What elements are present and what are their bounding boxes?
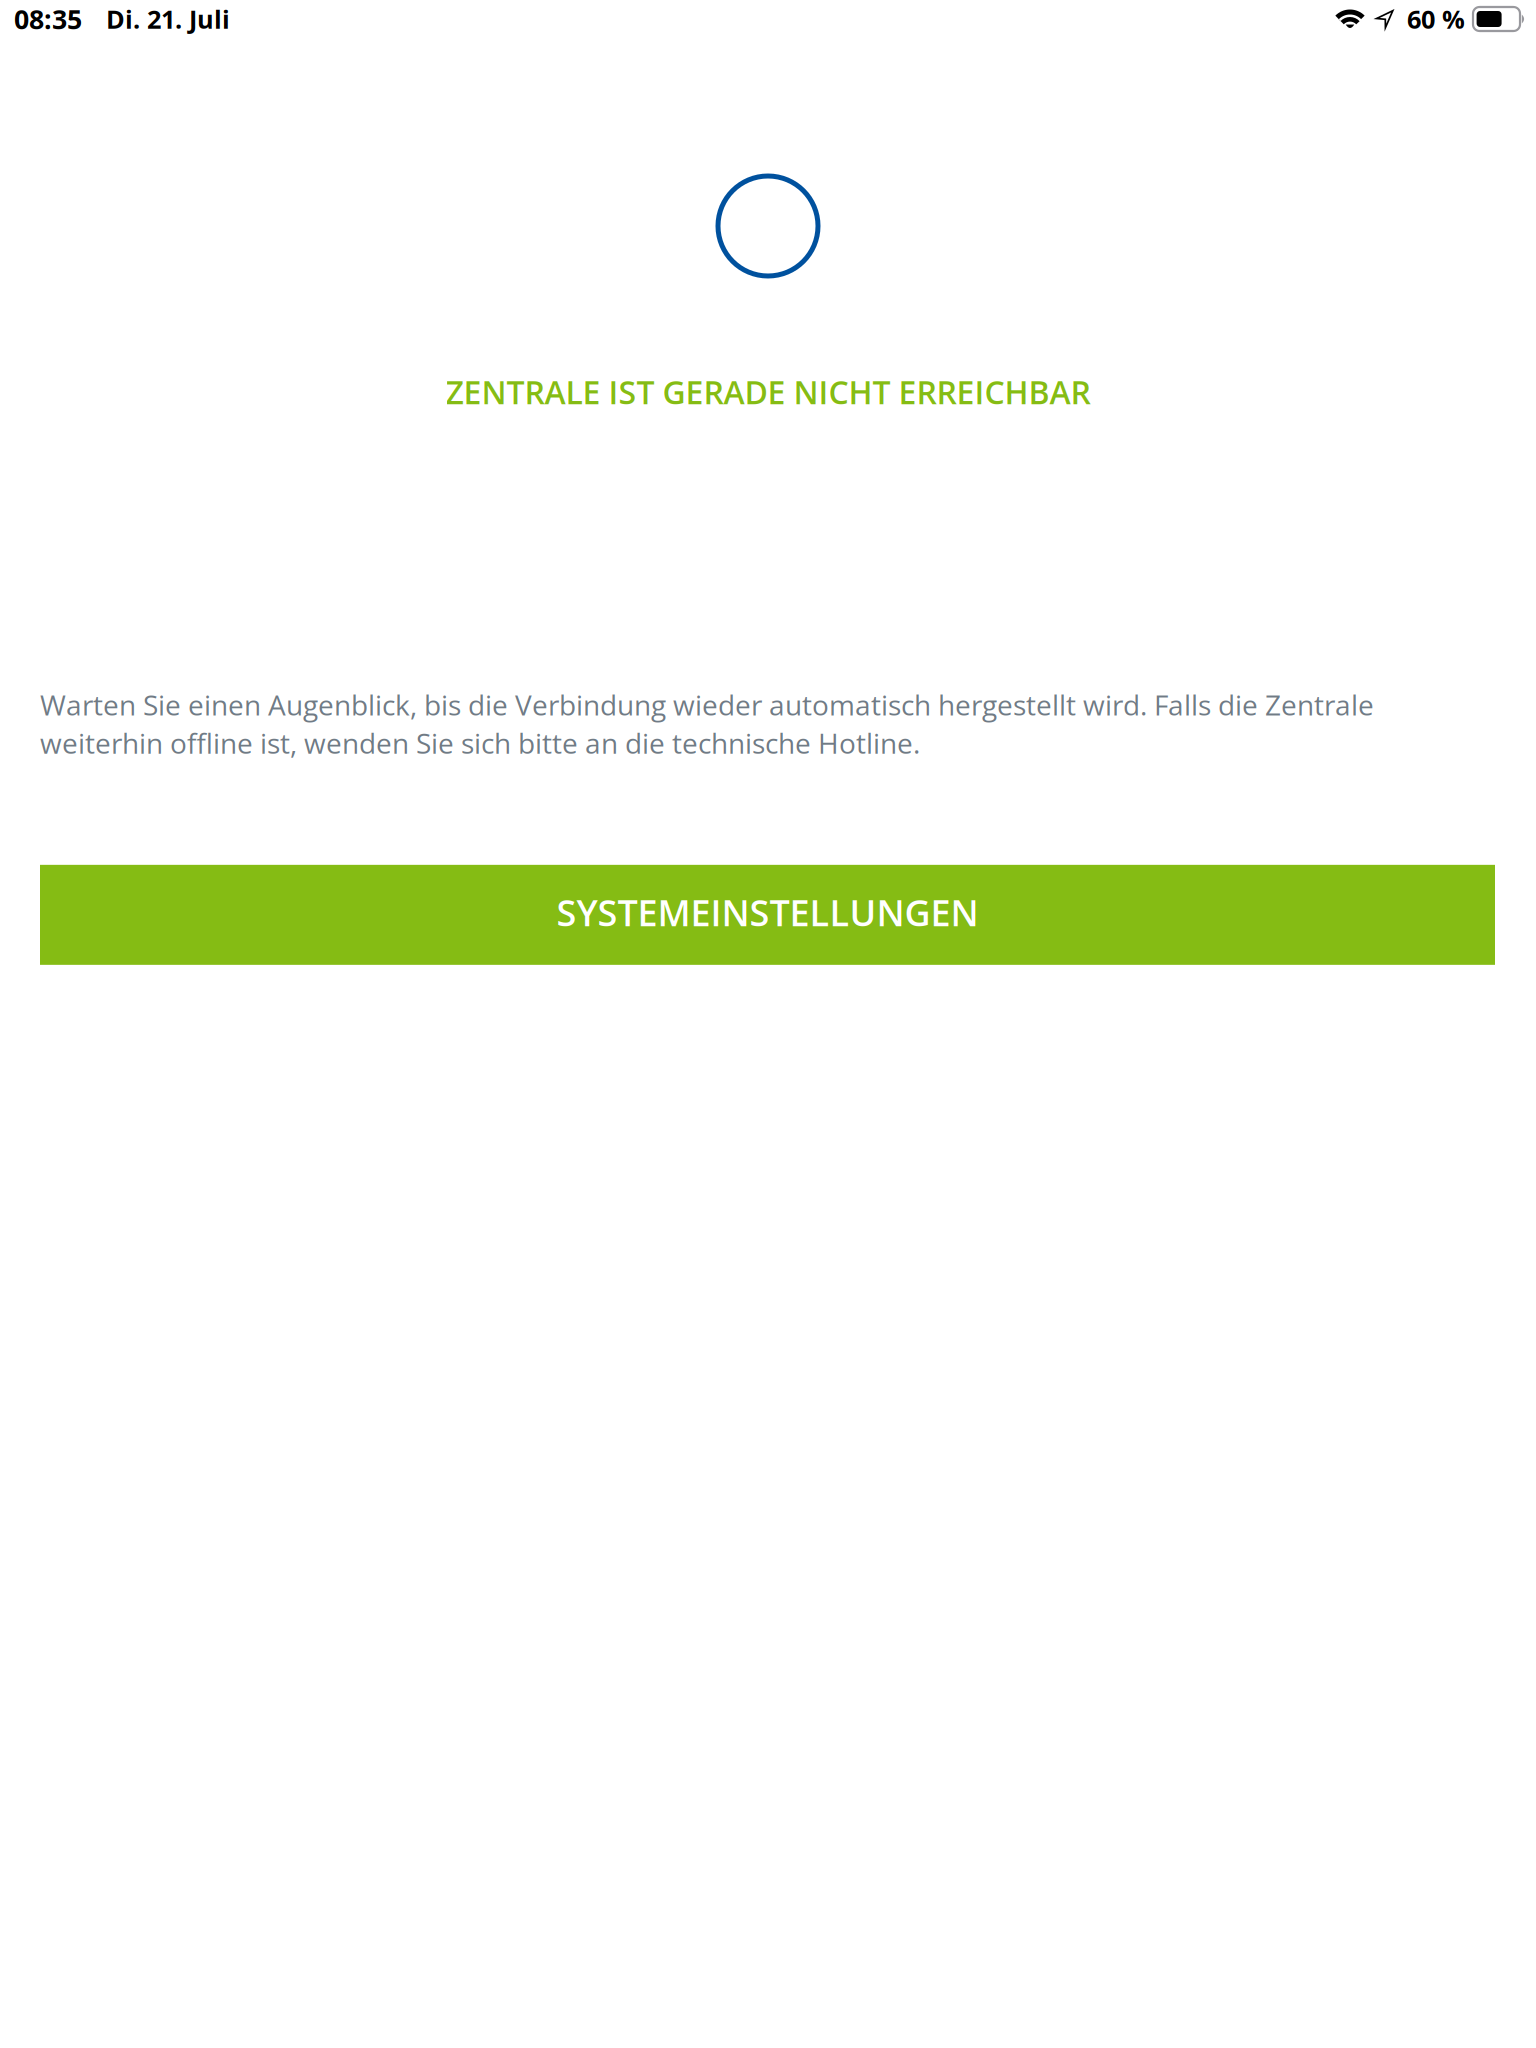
staticText: SYSTEMEINSTELLUNGEN xyxy=(556,888,978,937)
staticText: Di. 21. Juli xyxy=(106,2,230,36)
staticText: Warten Sie einen Augenblick, bis die Ver… xyxy=(40,686,1374,762)
staticText: 08:35 xyxy=(14,1,82,37)
staticText: 60 % xyxy=(1407,2,1465,36)
staticText: ZENTRALE IST GERADE NICHT ERREICHBAR xyxy=(445,370,1090,414)
button[interactable]: SYSTEMEINSTELLUNGEN xyxy=(40,865,1495,965)
